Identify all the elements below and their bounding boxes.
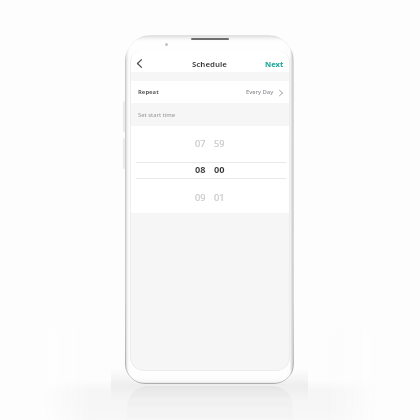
button[interactable]: 09: [195, 191, 225, 203]
staticText: 09: [195, 191, 206, 203]
button[interactable]: Back: [133, 57, 146, 70]
button[interactable]: Next: [260, 55, 289, 73]
staticText: Next: [265, 59, 284, 69]
staticText: 59: [214, 137, 225, 149]
staticText: 08: [195, 163, 206, 175]
staticText: Set start time: [138, 111, 176, 119]
button[interactable]: 07: [195, 137, 225, 149]
button[interactable]: 08: [195, 163, 225, 175]
staticText: Every Day: [246, 88, 274, 96]
staticText: 00: [214, 163, 225, 175]
staticText: Schedule: [192, 59, 228, 70]
button[interactable]: Repeat: [131, 81, 289, 103]
staticText: 07: [195, 137, 206, 149]
staticText: 01: [214, 191, 225, 203]
staticText: Repeat: [138, 88, 159, 96]
